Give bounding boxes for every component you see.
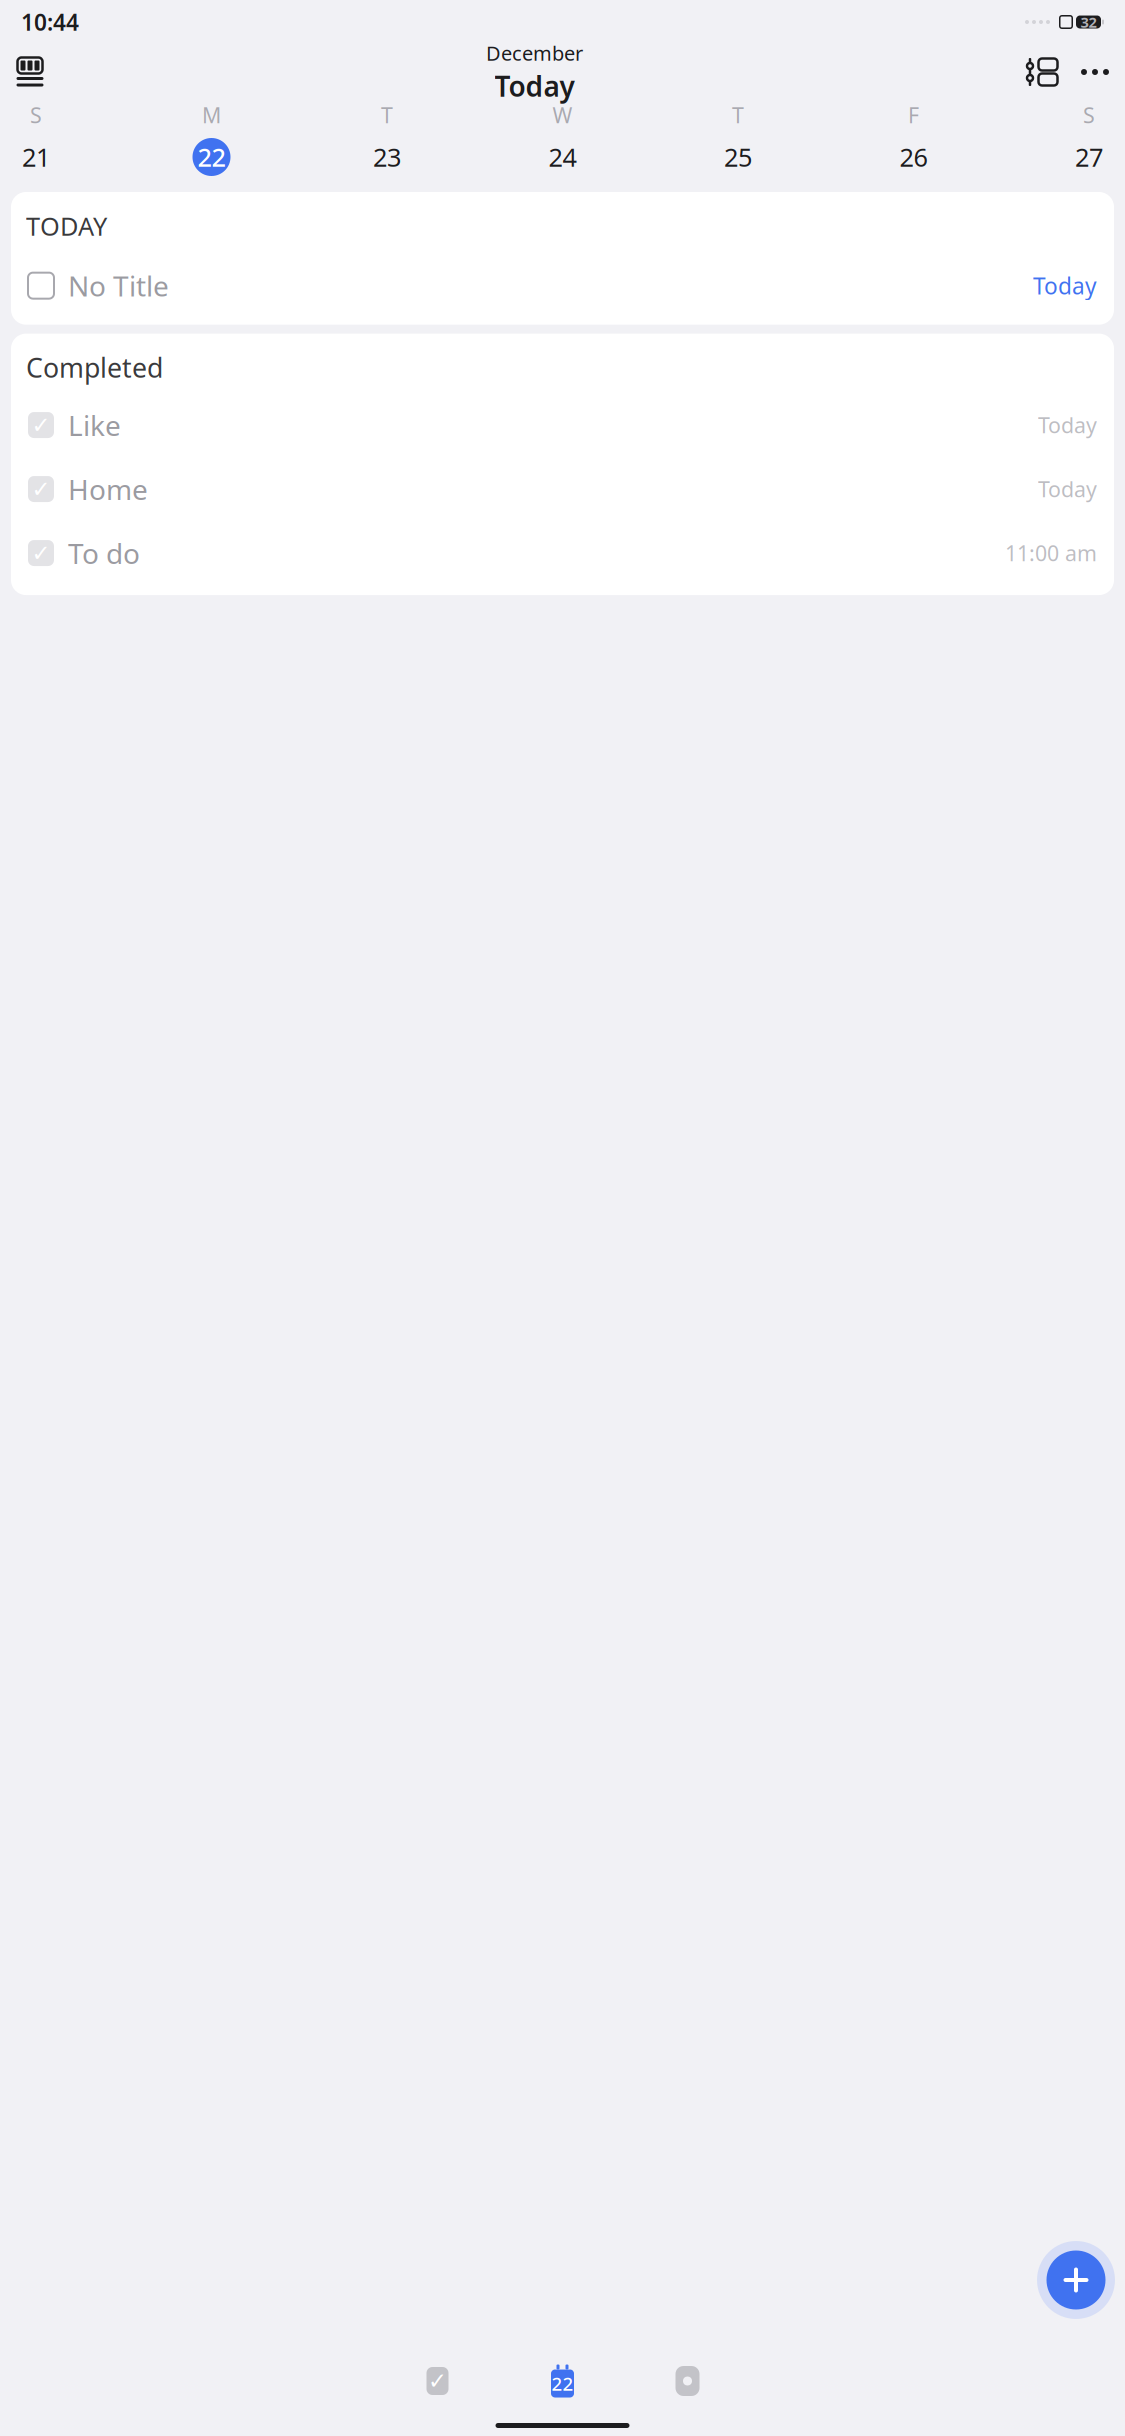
button[interactable]: F — [889, 104, 937, 176]
staticText: W — [552, 101, 572, 129]
staticText: Home — [68, 470, 148, 508]
button[interactable]: ✓ — [11, 521, 1114, 585]
button[interactable]: M — [187, 104, 235, 176]
staticText: T — [732, 101, 744, 129]
staticText: S — [30, 101, 42, 129]
staticText: TODAY — [26, 209, 107, 243]
staticText: 10:44 — [21, 7, 79, 37]
staticText: ✓ — [31, 412, 50, 438]
staticText: December — [486, 40, 583, 66]
staticText: Like — [68, 406, 121, 444]
button[interactable]: W — [538, 104, 586, 176]
staticText: 22 — [197, 140, 225, 174]
staticText: ✓ — [31, 476, 50, 502]
staticText: 23 — [373, 140, 401, 174]
staticText: No Title — [68, 267, 169, 304]
button[interactable]: No Title — [11, 253, 1114, 319]
staticText: Today — [1038, 411, 1097, 439]
staticText: T — [381, 101, 393, 129]
button[interactable]: Settings — [625, 2353, 750, 2409]
staticText: Today — [1033, 271, 1097, 301]
staticText: F — [908, 101, 919, 129]
staticText: 11:00 am — [1005, 539, 1097, 567]
staticText: M — [202, 101, 221, 129]
staticText: S — [1083, 101, 1095, 129]
staticText: 25 — [724, 140, 752, 174]
button[interactable]: T — [714, 104, 762, 176]
staticText: 21 — [22, 140, 50, 174]
button[interactable]: Tasks — [375, 2353, 500, 2409]
button[interactable]: T — [363, 104, 411, 176]
button[interactable]: Filter and sort — [1024, 57, 1058, 87]
staticText: 32 — [1080, 12, 1096, 32]
button[interactable]: Add task — [1036, 2240, 1116, 2320]
button[interactable]: S — [12, 104, 60, 176]
staticText: ✓ — [428, 2368, 447, 2394]
staticText: Completed — [26, 350, 163, 385]
staticText: ✓ — [31, 540, 50, 566]
staticText: Today — [1038, 475, 1097, 503]
staticText: To do — [68, 534, 140, 572]
button[interactable]: ✓ — [11, 457, 1114, 521]
button[interactable]: More options — [1080, 57, 1110, 87]
button[interactable]: S — [1065, 104, 1113, 176]
button[interactable]: Calendar — [500, 2353, 625, 2409]
button[interactable]: Board view — [15, 57, 45, 87]
staticText: 26 — [899, 140, 927, 174]
staticText: 22 — [551, 2371, 573, 2396]
staticText: Today — [494, 67, 574, 104]
staticText: 24 — [548, 140, 576, 174]
staticText: 27 — [1075, 140, 1103, 174]
button[interactable]: ✓ — [11, 393, 1114, 457]
